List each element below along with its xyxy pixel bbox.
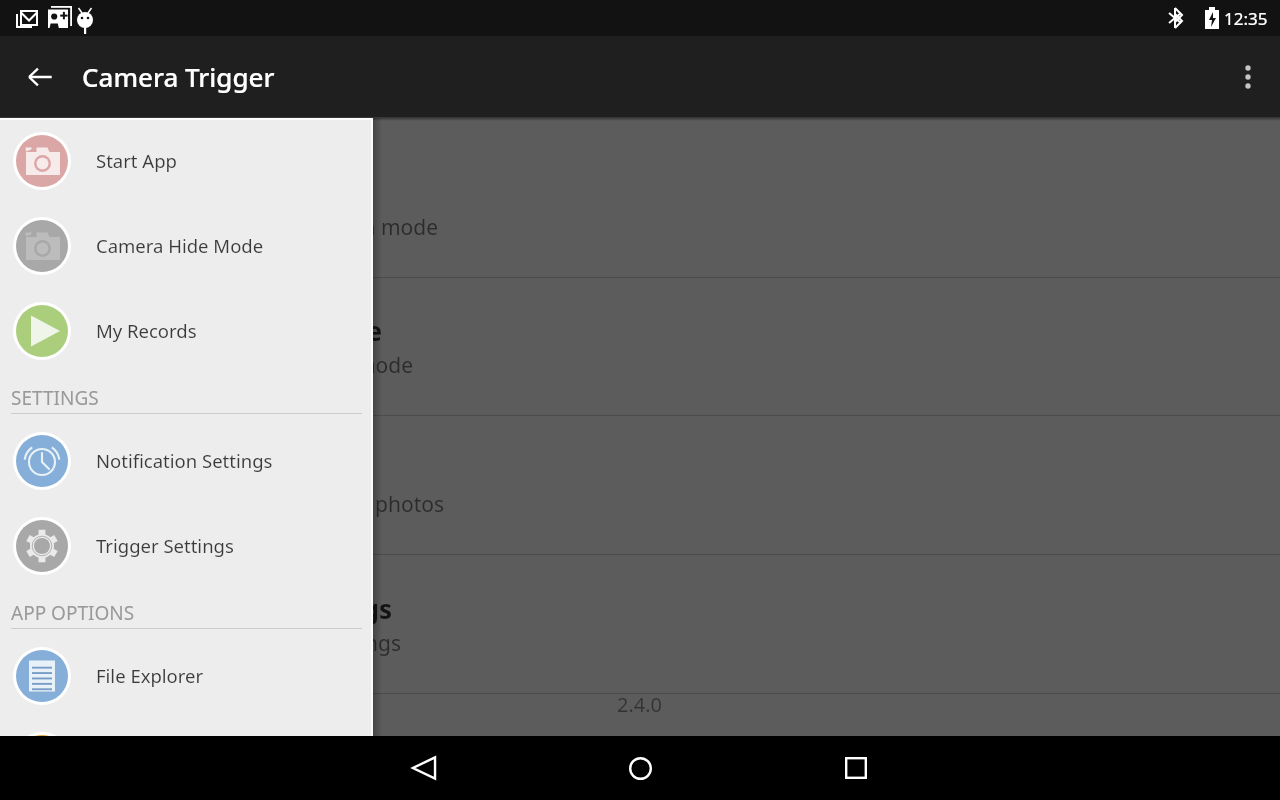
button[interactable]: Camera Hide Mode (0, 117, 1280, 278)
staticText: Trigger Mode (0, 313, 382, 348)
button[interactable]: More options (1224, 53, 1272, 101)
staticText: Camera Hide Mode (0, 175, 360, 210)
staticText: My Records (96, 318, 197, 343)
staticText: Notification Settings (96, 448, 273, 473)
staticText: APP OPTIONS (11, 600, 135, 626)
staticText: Camera Hide Mode (96, 233, 264, 258)
staticText: 2.4.0 (617, 691, 663, 718)
staticText: Photo Quality (0, 452, 362, 487)
button[interactable]: File Explorer (0, 633, 373, 718)
staticText: Trigger Settings (96, 533, 234, 558)
staticText: Resolution for photos (0, 490, 444, 519)
button[interactable]: Camera Hide Mode (0, 203, 373, 288)
button[interactable]: Trigger Mode (0, 278, 1280, 416)
button[interactable]: Recents (828, 736, 884, 800)
button[interactable]: Home (612, 736, 668, 800)
staticText: Select the trigger mode (0, 351, 413, 380)
staticText: File Explorer (96, 663, 204, 688)
button[interactable]: Help (0, 718, 373, 736)
button[interactable]: Back (396, 736, 452, 800)
staticText: Advanced Settings (0, 591, 392, 626)
button[interactable]: Back (16, 53, 64, 101)
staticText: Camera Trigger (82, 59, 275, 94)
staticText: 12:35 (1224, 7, 1268, 30)
button[interactable]: My Records (0, 288, 373, 373)
button[interactable]: Trigger Settings (0, 503, 373, 588)
staticText: Start App (96, 148, 177, 173)
staticText: SETTINGS (11, 385, 99, 411)
button[interactable]: Advanced Settings (0, 555, 1280, 694)
button[interactable]: Notification Settings (0, 418, 373, 503)
button[interactable]: Photo Quality (0, 416, 1280, 555)
staticText: More settings (0, 629, 401, 658)
button[interactable]: Start App (0, 118, 373, 203)
staticText: Enable the camera hidden mode (0, 213, 438, 242)
